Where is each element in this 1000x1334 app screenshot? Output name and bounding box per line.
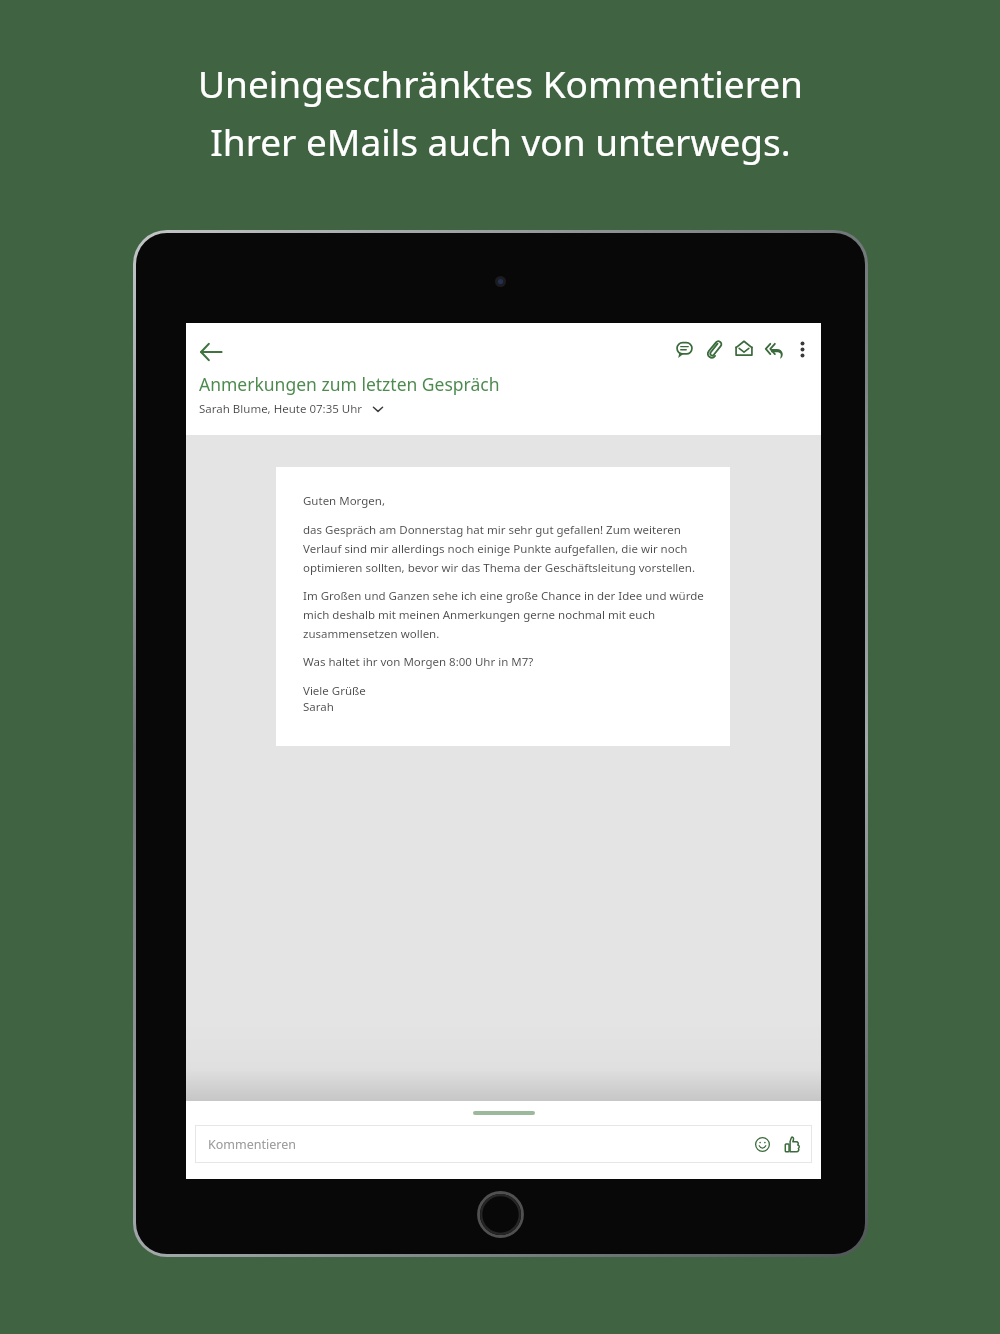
- button[interactable]: Show details: [370, 401, 386, 417]
- staticText: Sarah: [303, 699, 334, 715]
- button[interactable]: [473, 1111, 535, 1115]
- button[interactable]: Attachment: [699, 334, 729, 364]
- button[interactable]: Comment: [669, 334, 699, 364]
- button[interactable]: Like: [777, 1129, 807, 1159]
- button[interactable]: More options: [789, 336, 815, 362]
- button[interactable]: Home: [477, 1191, 524, 1238]
- button[interactable]: Reply all: [759, 334, 789, 364]
- staticText: Uneingeschränktes Kommentieren: [198, 58, 803, 108]
- staticText: Im Großen und Ganzen sehe ich eine große…: [303, 588, 714, 641]
- button[interactable]: Move to folder: [729, 334, 759, 364]
- button[interactable]: Guten Morgen,: [276, 467, 730, 746]
- staticText: das Gespräch am Donnerstag hat mir sehr …: [303, 522, 714, 575]
- staticText: Was haltet ihr von Morgen 8:00 Uhr in M7…: [303, 654, 534, 670]
- button[interactable]: Insert emoji: [747, 1129, 777, 1159]
- staticText: Viele Grüße: [303, 683, 366, 699]
- staticText: Kommentieren: [208, 1136, 296, 1153]
- staticText: Guten Morgen,: [303, 493, 385, 509]
- staticText: Anmerkungen zum letzten Gespräch: [199, 372, 500, 396]
- staticText: Ihrer eMails auch von unterwegs.: [210, 116, 791, 166]
- staticText: Sarah Blume, Heute 07:35 Uhr: [199, 401, 363, 417]
- button[interactable]: Kommentieren: [195, 1125, 812, 1163]
- button[interactable]: Back: [191, 332, 231, 372]
